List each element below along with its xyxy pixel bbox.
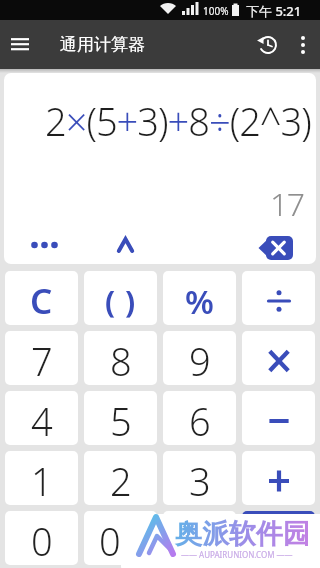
button[interactable] — [286, 20, 320, 69]
button[interactable]: = — [242, 511, 315, 565]
staticText: % — [185, 279, 214, 324]
button[interactable]: . — [163, 511, 236, 565]
button[interactable]: 3 — [163, 451, 236, 505]
button[interactable]: 4 — [5, 391, 78, 445]
button[interactable] — [242, 271, 315, 325]
button[interactable]: 0 — [5, 511, 78, 565]
staticText: 奥派软件园 — [175, 517, 310, 551]
staticText: 7 — [31, 335, 53, 385]
button[interactable]: 1 — [5, 451, 78, 505]
button[interactable] — [242, 331, 315, 385]
button[interactable] — [103, 225, 147, 264]
staticText: 00 — [99, 515, 143, 565]
staticText: C — [30, 277, 53, 325]
staticText: 6 — [189, 395, 211, 445]
staticText: ( ) — [105, 281, 137, 322]
staticText: 1 — [31, 455, 53, 505]
button[interactable] — [248, 20, 286, 69]
button[interactable]: 00 — [84, 511, 157, 565]
button[interactable]: 6 — [163, 391, 236, 445]
staticText: 100% — [203, 4, 229, 18]
staticText: 下午 5:21 — [246, 2, 302, 20]
staticText: = — [269, 519, 288, 563]
button[interactable] — [0, 20, 40, 69]
staticText: 8 — [110, 335, 132, 385]
staticText: 通用计算器 — [60, 34, 145, 55]
button[interactable]: ( ) — [84, 271, 157, 325]
button[interactable] — [248, 228, 304, 264]
button[interactable]: 5 — [84, 391, 157, 445]
button[interactable]: % — [163, 271, 236, 325]
staticText: 0 — [31, 515, 53, 565]
staticText: 17 — [270, 182, 304, 226]
button[interactable] — [22, 225, 66, 264]
button[interactable]: 9 — [163, 331, 236, 385]
button[interactable] — [242, 451, 315, 505]
staticText: 2 — [110, 455, 132, 505]
staticText: . — [195, 515, 205, 565]
staticText: 3 — [189, 455, 211, 505]
button[interactable] — [242, 391, 315, 445]
button[interactable]: 8 — [84, 331, 157, 385]
staticText: 4 — [31, 395, 53, 445]
button[interactable]: 7 — [5, 331, 78, 385]
staticText: 2×(5+3)+8÷(2^3) — [45, 95, 311, 147]
staticText: 5 — [110, 395, 132, 445]
staticText: 9 — [189, 335, 211, 385]
button[interactable]: C — [5, 271, 78, 325]
button[interactable]: 2 — [84, 451, 157, 505]
staticText: —— AUPAIRUNION.COM —— — [181, 549, 293, 560]
